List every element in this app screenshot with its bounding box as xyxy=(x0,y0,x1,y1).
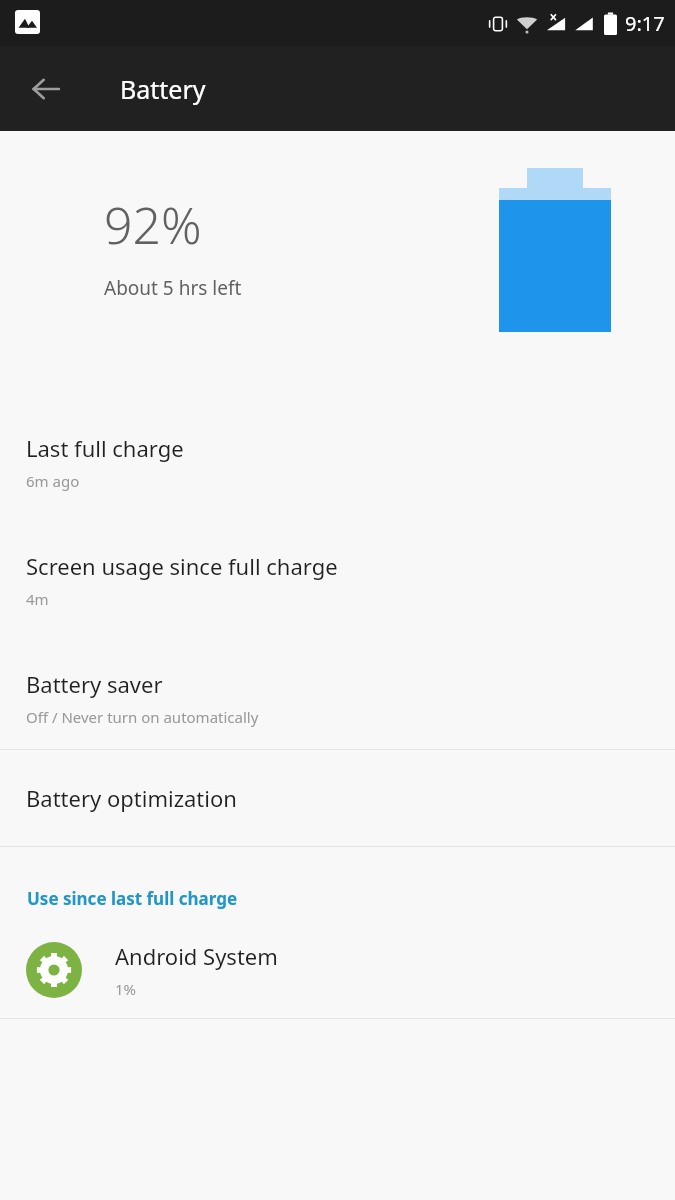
staticText: Screen usage since full charge xyxy=(26,551,338,581)
staticText: Battery optimization xyxy=(26,783,237,813)
staticText: About 5 hrs left xyxy=(104,275,242,301)
button[interactable]: Last full charge xyxy=(0,433,675,491)
staticText: Battery saver xyxy=(26,669,163,699)
button[interactable]: Battery optimization xyxy=(0,750,675,846)
button[interactable]: Battery saver xyxy=(0,669,675,727)
staticText: 9:17 xyxy=(625,10,665,37)
staticText: 6m ago xyxy=(26,471,80,491)
staticText: 4m xyxy=(26,589,49,609)
staticText: Last full charge xyxy=(26,433,184,463)
staticText: Android System xyxy=(115,941,278,971)
button[interactable]: Android System xyxy=(0,941,675,999)
staticText: Battery xyxy=(120,72,206,106)
staticText: Off / Never turn on automatically xyxy=(26,707,259,727)
staticText: 1% xyxy=(115,979,137,999)
button[interactable]: Screen usage since full charge xyxy=(0,551,675,609)
button[interactable]: Back xyxy=(16,59,76,119)
staticText: 92% xyxy=(104,191,202,259)
staticText: Use since last full charge xyxy=(27,887,238,910)
